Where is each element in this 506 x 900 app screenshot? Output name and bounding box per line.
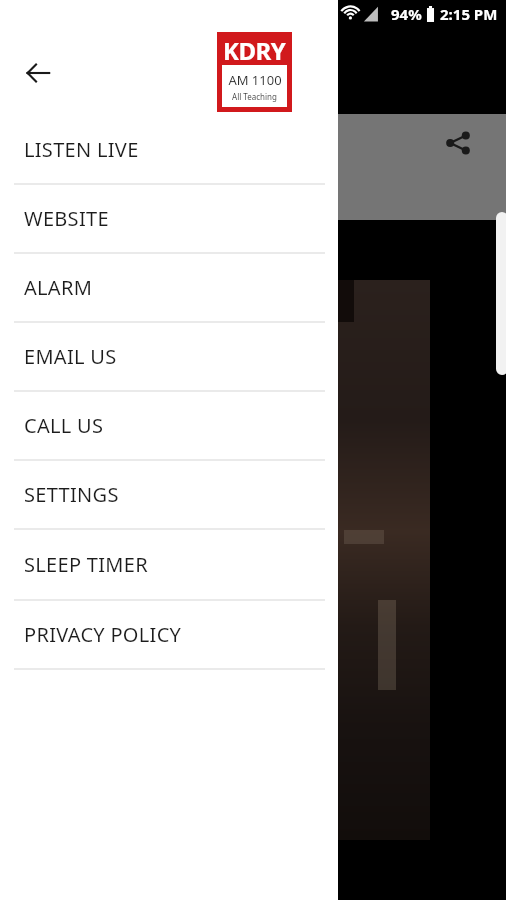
button[interactable]: CALL US bbox=[0, 392, 338, 461]
staticText: 2:15 PM bbox=[440, 4, 498, 24]
staticText: EMAIL US bbox=[24, 343, 117, 370]
staticText: KDRY bbox=[223, 34, 286, 65]
button[interactable]: EMAIL US bbox=[0, 323, 338, 392]
button[interactable]: SLEEP TIMER bbox=[0, 530, 338, 601]
staticText: 94% bbox=[391, 4, 422, 24]
staticText: WEBSITE bbox=[24, 205, 109, 232]
staticText: PRIVACY POLICY bbox=[24, 621, 182, 648]
staticText: ALARM bbox=[24, 274, 93, 301]
staticText: SETTINGS bbox=[24, 481, 119, 508]
button[interactable]: WEBSITE bbox=[0, 185, 338, 254]
button[interactable]: Share bbox=[438, 123, 478, 163]
staticText: AM 1100 bbox=[228, 71, 282, 89]
button[interactable]: LISTEN LIVE bbox=[0, 116, 338, 185]
staticText: All Teaching bbox=[232, 91, 277, 102]
button[interactable]: Back bbox=[16, 51, 60, 95]
button[interactable]: SETTINGS bbox=[0, 461, 338, 530]
button[interactable]: ALARM bbox=[0, 254, 338, 323]
staticText: LISTEN LIVE bbox=[24, 136, 139, 163]
staticText: SLEEP TIMER bbox=[24, 551, 148, 578]
staticText: CALL US bbox=[24, 412, 104, 439]
button[interactable]: PRIVACY POLICY bbox=[0, 601, 338, 670]
